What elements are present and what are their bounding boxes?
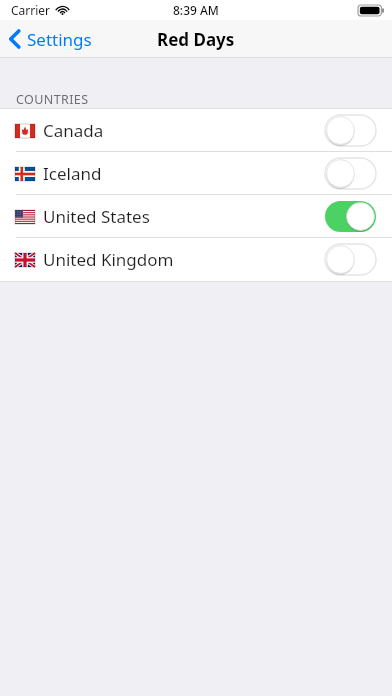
button[interactable]: Off <box>325 244 376 275</box>
button[interactable]: Off <box>325 158 376 189</box>
button[interactable]: Canada <box>0 109 392 152</box>
button[interactable]: Settings <box>0 20 102 58</box>
staticText: Canada <box>43 119 104 142</box>
button[interactable]: On <box>325 201 376 232</box>
staticText: Iceland <box>43 162 102 185</box>
staticText: United States <box>43 205 150 228</box>
staticText: Settings <box>27 28 92 51</box>
button[interactable]: Off <box>325 115 376 146</box>
staticText: Red Days <box>157 28 235 51</box>
staticText: COUNTRIES <box>16 91 89 108</box>
staticText: Carrier <box>11 2 51 18</box>
button[interactable]: Iceland <box>0 152 392 195</box>
button[interactable]: United States <box>0 195 392 238</box>
staticText: United Kingdom <box>43 248 174 271</box>
staticText: 8:39 AM <box>173 2 219 18</box>
button[interactable]: United Kingdom <box>0 238 392 281</box>
